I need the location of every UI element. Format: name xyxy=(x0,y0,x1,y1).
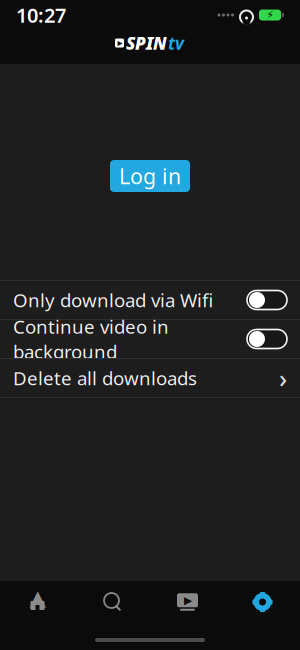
staticText: SPIN xyxy=(126,31,167,54)
staticText: Continue video in background xyxy=(13,314,169,364)
staticText: ▶ xyxy=(117,39,122,47)
button[interactable]: Delete all downloads xyxy=(0,359,300,397)
button[interactable]: Continue video in background xyxy=(0,320,300,358)
staticText: Log in xyxy=(119,162,181,190)
staticText: ▲ xyxy=(29,585,45,610)
button[interactable]: Search xyxy=(75,582,150,622)
staticText: Only download via Wifi xyxy=(13,288,213,312)
staticText: Delete all downloads xyxy=(13,366,197,390)
button[interactable]: Videos xyxy=(150,582,225,622)
staticText: ▶ xyxy=(184,594,192,606)
button[interactable]: Settings xyxy=(225,582,300,622)
button[interactable]: Home xyxy=(0,582,75,622)
staticText: › xyxy=(279,361,287,395)
staticText: ⚡︎ xyxy=(266,9,273,21)
button[interactable]: Log in xyxy=(110,160,190,192)
staticText: tv xyxy=(168,31,184,54)
button[interactable]: Only download via Wifi xyxy=(0,281,300,319)
staticText: 10:27 xyxy=(16,2,66,28)
